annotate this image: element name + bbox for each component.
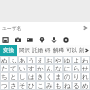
staticText: ん xyxy=(46,65,53,71)
staticText: き xyxy=(37,73,44,80)
button[interactable]: ひ xyxy=(28,82,35,89)
button[interactable]: ふ xyxy=(10,57,17,63)
staticText: ひ xyxy=(28,82,35,89)
button[interactable]: き xyxy=(37,73,44,80)
staticText: い xyxy=(19,65,26,71)
button[interactable]: は xyxy=(28,73,35,80)
staticText: て xyxy=(10,65,17,71)
button[interactable]: う xyxy=(28,57,35,63)
button[interactable]: せ xyxy=(82,65,89,71)
staticText: 託婚 xyxy=(32,47,43,54)
button[interactable]: 関沢 xyxy=(19,47,30,54)
staticText: ら xyxy=(73,65,80,71)
staticText: 可以 xyxy=(66,47,77,54)
button[interactable]: と xyxy=(10,73,17,80)
button[interactable]: ら xyxy=(73,65,80,71)
button[interactable]: そ xyxy=(19,82,26,89)
button[interactable]: 可以 xyxy=(66,47,77,54)
staticText: お xyxy=(46,57,53,63)
staticText: れ xyxy=(82,73,89,80)
staticText: に xyxy=(64,65,71,71)
staticText: は xyxy=(28,73,35,80)
staticText: な xyxy=(55,65,62,71)
staticText: 変換 xyxy=(3,47,14,54)
button[interactable]: お xyxy=(46,57,53,63)
staticText: 関沢 xyxy=(19,47,30,54)
button[interactable]: な xyxy=(55,65,62,71)
staticText: す xyxy=(28,65,35,71)
button[interactable]: る xyxy=(73,82,80,89)
button[interactable]: い xyxy=(19,65,26,71)
staticText: も xyxy=(55,82,62,89)
button[interactable]: よ xyxy=(73,57,80,63)
button[interactable]: 碍 xyxy=(45,47,51,54)
button[interactable]: ま xyxy=(55,73,62,80)
staticText: く xyxy=(46,73,53,80)
button[interactable]: あ xyxy=(19,57,26,63)
staticText: う xyxy=(28,57,35,63)
staticText: さ xyxy=(10,82,17,89)
staticText: ふ xyxy=(10,57,17,63)
button[interactable]: り xyxy=(73,73,80,80)
staticText: 解稀 xyxy=(53,47,64,54)
button[interactable]: れ xyxy=(82,73,89,80)
staticText: か xyxy=(37,65,44,71)
button[interactable]: か xyxy=(37,65,44,71)
button[interactable]: つ xyxy=(1,82,8,89)
staticText: ね xyxy=(64,82,71,89)
button[interactable]: め xyxy=(82,82,89,89)
staticText: こ xyxy=(37,82,44,89)
button[interactable]: く xyxy=(46,73,53,80)
button[interactable]: の xyxy=(64,73,71,80)
staticText: ぬ xyxy=(1,57,8,63)
button[interactable]: 刻 xyxy=(79,47,81,54)
staticText: や xyxy=(55,57,62,63)
button[interactable]: す xyxy=(28,65,35,71)
staticText: 碍 xyxy=(45,47,51,54)
staticText: り xyxy=(73,73,80,80)
staticText: の xyxy=(64,73,71,80)
button[interactable]: Send xyxy=(80,23,90,33)
button[interactable]: Camera xyxy=(12,34,24,45)
button[interactable]: Voice xyxy=(48,34,60,45)
staticText: ま xyxy=(55,73,62,80)
button[interactable]: More candidates xyxy=(82,45,90,56)
button[interactable]: た xyxy=(1,65,8,71)
staticText: る xyxy=(73,82,80,89)
button[interactable]: ち xyxy=(1,73,8,80)
button[interactable]: わ xyxy=(82,57,89,63)
staticText: そ xyxy=(19,82,26,89)
button[interactable]: Location xyxy=(36,34,48,45)
staticText: ち xyxy=(1,73,8,80)
staticText: つ xyxy=(1,82,8,89)
staticText: わ xyxy=(82,57,89,63)
button[interactable]: さ xyxy=(10,82,17,89)
button[interactable]: も xyxy=(55,82,62,89)
staticText: た xyxy=(1,65,8,71)
button[interactable]: Gallery xyxy=(0,34,12,45)
staticText: よ xyxy=(73,57,80,63)
button[interactable]: み xyxy=(46,82,53,89)
staticText: ゆ xyxy=(64,57,71,63)
button[interactable]: ぬ xyxy=(1,57,8,63)
staticText: と xyxy=(10,73,17,80)
button[interactable]: Settings xyxy=(60,34,72,45)
button[interactable]: ね xyxy=(64,82,71,89)
button[interactable]: 変換 xyxy=(0,45,17,56)
button[interactable]: し xyxy=(19,73,26,80)
button[interactable]: 解稀 xyxy=(53,47,64,54)
staticText: み xyxy=(46,82,53,89)
button[interactable]: 託婚 xyxy=(32,47,43,54)
staticText: 刻 xyxy=(79,47,81,54)
staticText: め xyxy=(82,82,89,89)
staticText: ユーザ名 xyxy=(2,25,22,31)
button[interactable]: こ xyxy=(37,82,44,89)
button[interactable]: え xyxy=(37,57,44,63)
staticText: し xyxy=(19,73,26,80)
button[interactable]: ゆ xyxy=(64,57,71,63)
button[interactable]: て xyxy=(10,65,17,71)
button[interactable]: に xyxy=(64,65,71,71)
button[interactable]: や xyxy=(55,57,62,63)
button[interactable]: Video xyxy=(24,34,36,45)
button[interactable]: ん xyxy=(46,65,53,71)
